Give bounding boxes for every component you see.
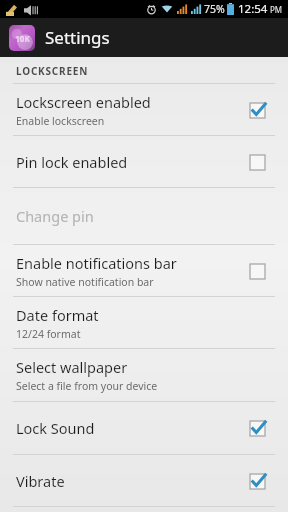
button[interactable]: Select wallpaper	[0, 349, 288, 401]
staticText: Select a file from your device	[16, 379, 158, 393]
staticText: LOCKSCREEN	[16, 64, 89, 78]
other: App icon	[9, 25, 35, 51]
staticText: 10K	[15, 33, 30, 44]
button[interactable]: Date format	[0, 297, 288, 348]
button[interactable]: Pin lock enabled	[0, 136, 288, 187]
other: Lockscreen enabled	[244, 97, 270, 123]
staticText: Select wallpaper	[16, 357, 128, 377]
staticText: Vibrate	[16, 471, 65, 491]
other: Lock Sound	[244, 415, 270, 441]
staticText: Pin lock enabled	[16, 152, 128, 172]
staticText: Lockscreen enabled	[16, 92, 151, 112]
staticText: Enable lockscreen	[16, 114, 105, 128]
button[interactable]: Lockscreen enabled	[0, 84, 288, 135]
staticText: 12/24 format	[16, 327, 81, 341]
staticText: Change pin	[16, 206, 94, 226]
other: Pin lock enabled	[244, 149, 270, 175]
staticText: Date format	[16, 305, 99, 325]
staticText: 75%	[204, 2, 225, 16]
staticText: Show native notification bar	[16, 275, 154, 289]
other: Enable notifications bar	[244, 258, 270, 284]
staticText: Enable notifications bar	[16, 253, 177, 273]
other: Vibrate	[244, 468, 270, 494]
staticText: Lock Sound	[16, 418, 95, 438]
button[interactable]: Vibrate	[0, 455, 288, 506]
button[interactable]: App icon	[0, 18, 288, 57]
staticText: 12:54	[238, 1, 268, 17]
button[interactable]: Lock Sound	[0, 402, 288, 454]
button[interactable]: Change pin	[0, 188, 288, 244]
staticText: Settings	[45, 26, 110, 49]
staticText: PM	[270, 4, 283, 15]
button[interactable]: Enable notifications bar	[0, 245, 288, 296]
